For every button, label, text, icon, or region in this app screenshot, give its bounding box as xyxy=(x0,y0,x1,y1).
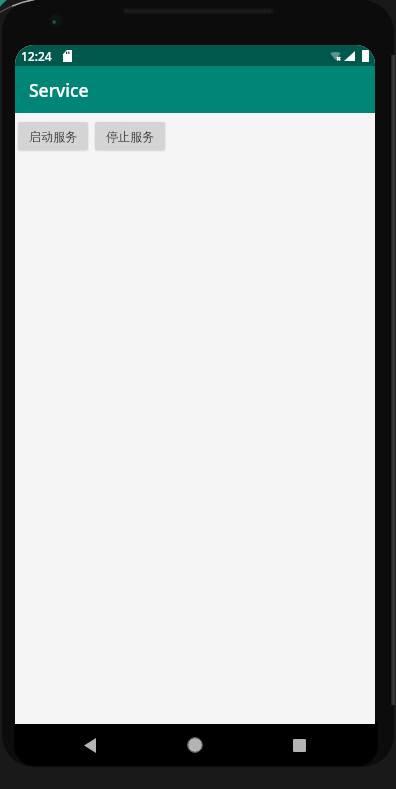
button[interactable]: Home xyxy=(175,725,215,765)
staticText: 启动服务 xyxy=(29,129,77,144)
staticText: Service xyxy=(29,78,89,102)
button[interactable]: 停止服务 xyxy=(95,122,165,150)
button[interactable]: Recents xyxy=(279,725,319,765)
button[interactable]: Back xyxy=(70,725,110,765)
staticText: 12:24 xyxy=(21,48,52,64)
staticText: 停止服务 xyxy=(106,129,154,144)
button[interactable]: 启动服务 xyxy=(18,122,88,150)
